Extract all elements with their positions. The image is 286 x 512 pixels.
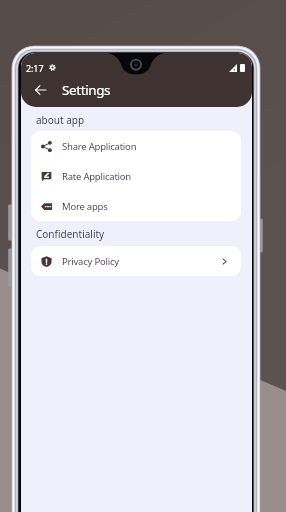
button[interactable]: More apps <box>31 191 241 221</box>
staticText: about app <box>36 113 85 127</box>
staticText: Confidentiality <box>36 227 105 241</box>
staticText: Share Application <box>62 140 137 153</box>
button[interactable]: Rate Application <box>31 161 241 191</box>
button[interactable]: Share Application <box>31 131 241 161</box>
staticText: Rate Application <box>62 170 132 183</box>
staticText: Settings <box>62 81 111 99</box>
staticText: Privacy Policy <box>62 255 119 268</box>
button[interactable]: Back <box>30 80 50 100</box>
staticText: 2:17 <box>26 62 44 74</box>
staticText: More apps <box>62 200 108 213</box>
button[interactable]: Privacy Policy <box>31 246 241 276</box>
